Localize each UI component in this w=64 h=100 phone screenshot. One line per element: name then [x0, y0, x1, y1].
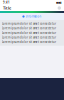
staticText: Lorem ipsum dolor sit amet consectetur [2, 26, 56, 30]
staticText: Title [3, 5, 11, 11]
staticText: Lorem ipsum dolor sit amet consectetur [2, 36, 56, 39]
staticText: Lorem ipsum dolor sit amet consectetur [2, 22, 56, 25]
staticText: Information [26, 15, 42, 18]
staticText: 9:41 [3, 1, 10, 4]
staticText: Lorem ipsum dolor sit amet consectetur [2, 31, 56, 35]
staticText: ◼︎◼︎▮ [56, 1, 61, 4]
staticText: Lorem ipsum dolor sit amet consectetur [2, 40, 56, 44]
